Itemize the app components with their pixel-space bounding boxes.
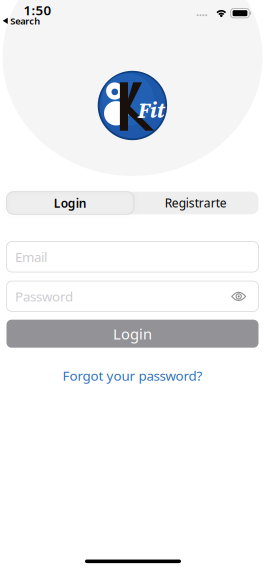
button[interactable]: Login xyxy=(6,192,134,214)
button[interactable]: Show password xyxy=(227,287,251,306)
staticText: Email xyxy=(15,248,47,266)
staticText: Search xyxy=(10,15,40,27)
staticText: Login xyxy=(113,324,152,343)
staticText: Password xyxy=(15,287,73,305)
button[interactable]: Login xyxy=(6,320,258,348)
staticText: 1:50 xyxy=(23,1,51,19)
button[interactable]: Forgot your password? xyxy=(62,367,202,384)
button[interactable]: Registrarte xyxy=(136,193,256,213)
staticText: Forgot your password? xyxy=(62,367,202,384)
button[interactable]: Back to Search xyxy=(3,15,40,27)
button[interactable]: Email xyxy=(6,242,258,272)
staticText: Fit xyxy=(138,95,165,125)
button[interactable]: Password xyxy=(6,281,258,312)
staticText: Login xyxy=(54,195,87,211)
staticText: Registrarte xyxy=(165,195,227,211)
